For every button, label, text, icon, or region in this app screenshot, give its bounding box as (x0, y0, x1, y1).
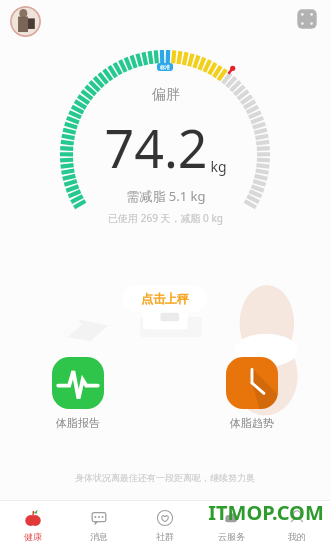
staticText: 需减脂 5.1 kg (126, 187, 206, 205)
staticText: 标准 (160, 64, 170, 70)
button[interactable]: 我的 (264, 501, 330, 550)
button[interactable]: Profile (10, 6, 41, 37)
staticText: kg (210, 157, 227, 176)
staticText: 体脂报告 (56, 416, 100, 430)
staticText: 已使用 269 天，减脂 0 kg (108, 211, 223, 225)
button[interactable]: 云服务 (198, 501, 264, 550)
staticText: 74.2 (104, 112, 208, 183)
staticText: 我的 (288, 531, 306, 542)
staticText: 体脂趋势 (230, 416, 274, 430)
button[interactable]: Body fat trend (226, 357, 278, 409)
staticText: ITMOP.COM (208, 499, 324, 526)
staticText: 消息 (90, 531, 108, 542)
button[interactable]: 社群 (132, 501, 198, 550)
staticText: 点击上秤 (141, 291, 189, 306)
staticText: 健康 (24, 531, 42, 542)
staticText: 云服务 (218, 531, 245, 542)
staticText: 身体状况离最佳还有一段距离呢，继续努力奥 (75, 472, 255, 483)
button[interactable]: My scale (296, 8, 318, 30)
button[interactable]: 点击上秤 (123, 285, 207, 312)
button[interactable]: 消息 (66, 501, 132, 550)
staticText: 社群 (156, 531, 174, 542)
staticText: 偏胖 (152, 86, 180, 104)
button[interactable]: Body fat report (52, 357, 104, 409)
button[interactable]: 健康 (0, 501, 66, 550)
